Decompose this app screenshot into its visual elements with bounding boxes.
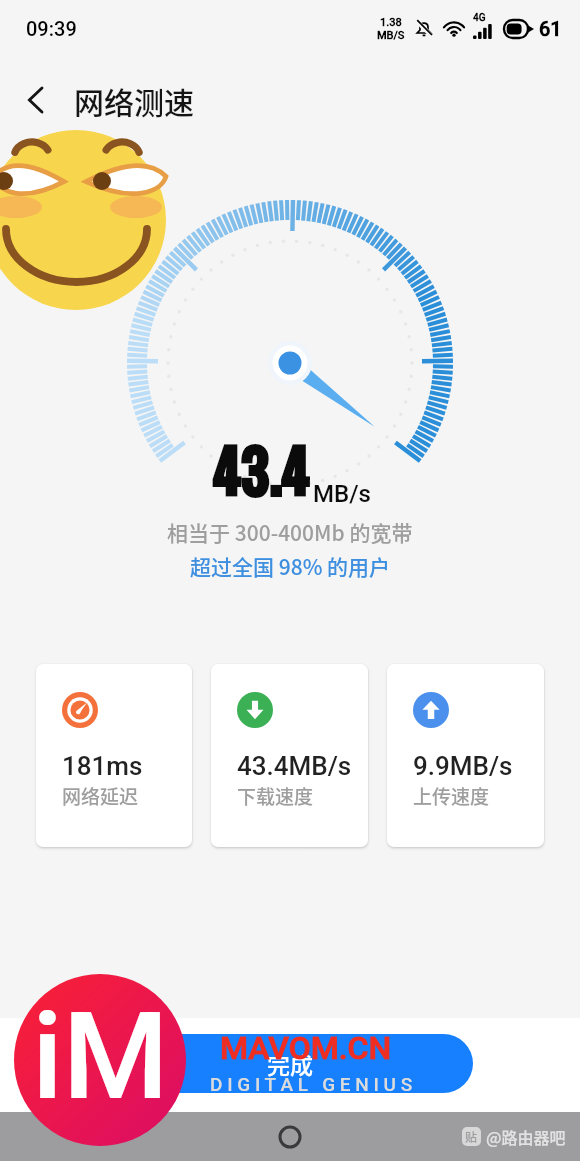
staticText: 9.9MB/s [413, 751, 513, 781]
staticText: 下载速度 [237, 782, 314, 810]
staticText: 超过全国 98% 的用户 [190, 551, 391, 581]
staticText: MB/S [377, 29, 405, 42]
button[interactable]: Home [278, 1125, 302, 1149]
staticText: 网络延迟 [62, 782, 139, 810]
staticText: iM [32, 986, 169, 1128]
staticText: 贴 [465, 1128, 478, 1145]
staticText: 1.38 [380, 16, 402, 29]
staticText: 相当于 300-400Mb 的宽带 [167, 517, 413, 547]
staticText: MB/s [313, 480, 371, 508]
staticText: 181ms [62, 751, 143, 781]
staticText: 4G [473, 12, 486, 24]
staticText: 完成 [267, 1047, 313, 1080]
button[interactable]: 43.4MB/s [211, 664, 368, 847]
staticText: 61 [539, 17, 562, 40]
staticText: MAVOM.CN [220, 1029, 392, 1067]
staticText: 上传速度 [413, 782, 490, 810]
button[interactable]: 完成 [107, 1034, 473, 1093]
staticText: 网络测速 [74, 79, 194, 122]
staticText: 09:39 [26, 17, 77, 40]
staticText: 43.4MB/s [237, 751, 352, 781]
staticText: @路由器吧 [486, 1125, 566, 1148]
button[interactable]: 181ms [36, 664, 192, 847]
button[interactable]: 9.9MB/s [387, 664, 544, 847]
staticText: D I G I T A L G E N I U S [210, 1073, 413, 1095]
staticText: 43.4 [213, 429, 309, 516]
button[interactable]: Back [12, 76, 60, 124]
